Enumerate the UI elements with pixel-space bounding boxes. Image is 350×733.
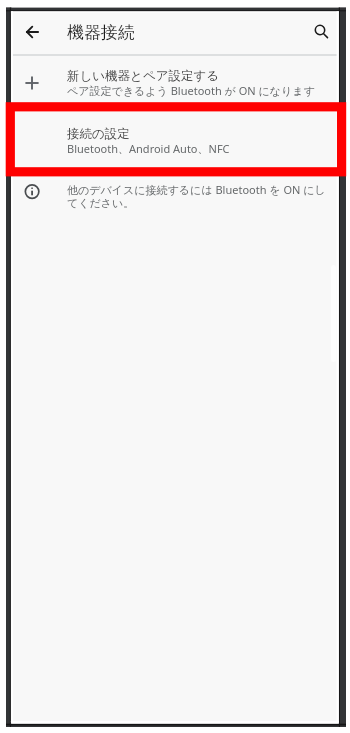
button[interactable]: Back bbox=[20, 20, 44, 44]
other: Information bbox=[20, 180, 44, 204]
staticText: Bluetooth、Android Auto、NFC bbox=[67, 141, 230, 156]
staticText: 機器接続 bbox=[67, 22, 135, 43]
button[interactable]: 接続の設定 bbox=[12, 114, 337, 172]
staticText: 新しい機器とペア設定する bbox=[67, 68, 220, 84]
staticText: ペア設定できるよう Bluetooth が ON になります bbox=[67, 83, 315, 98]
staticText: 接続の設定 bbox=[67, 126, 130, 142]
staticText: 他のデバイスに接続するには Bluetooth を ON にしてください。 bbox=[67, 182, 329, 210]
button[interactable]: 新しい機器とペア設定する bbox=[12, 56, 337, 114]
button[interactable]: Search bbox=[308, 18, 332, 42]
